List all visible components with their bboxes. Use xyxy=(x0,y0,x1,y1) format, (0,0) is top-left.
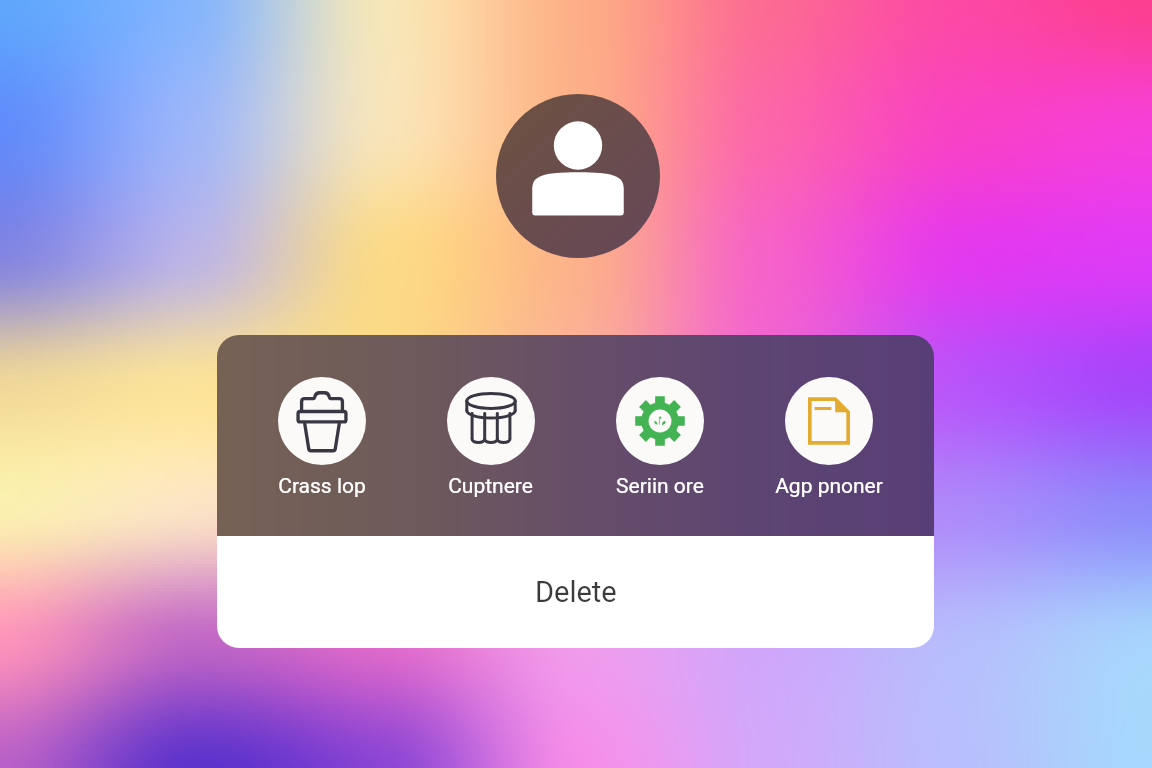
staticText: Seriin ore xyxy=(616,474,704,499)
staticText: Delete xyxy=(535,575,617,609)
button[interactable]: Delete xyxy=(217,536,934,648)
button[interactable]: Seriin ore xyxy=(575,335,744,499)
button[interactable]: Crass lop xyxy=(238,335,406,499)
staticText: Cuptnere xyxy=(448,474,533,499)
button[interactable]: Profile avatar xyxy=(496,94,660,258)
staticText: Agp pnoner xyxy=(775,474,883,499)
button[interactable]: Cuptnere xyxy=(406,335,575,499)
staticText: Crass lop xyxy=(278,474,366,499)
button[interactable]: Agp pnoner xyxy=(744,335,913,499)
